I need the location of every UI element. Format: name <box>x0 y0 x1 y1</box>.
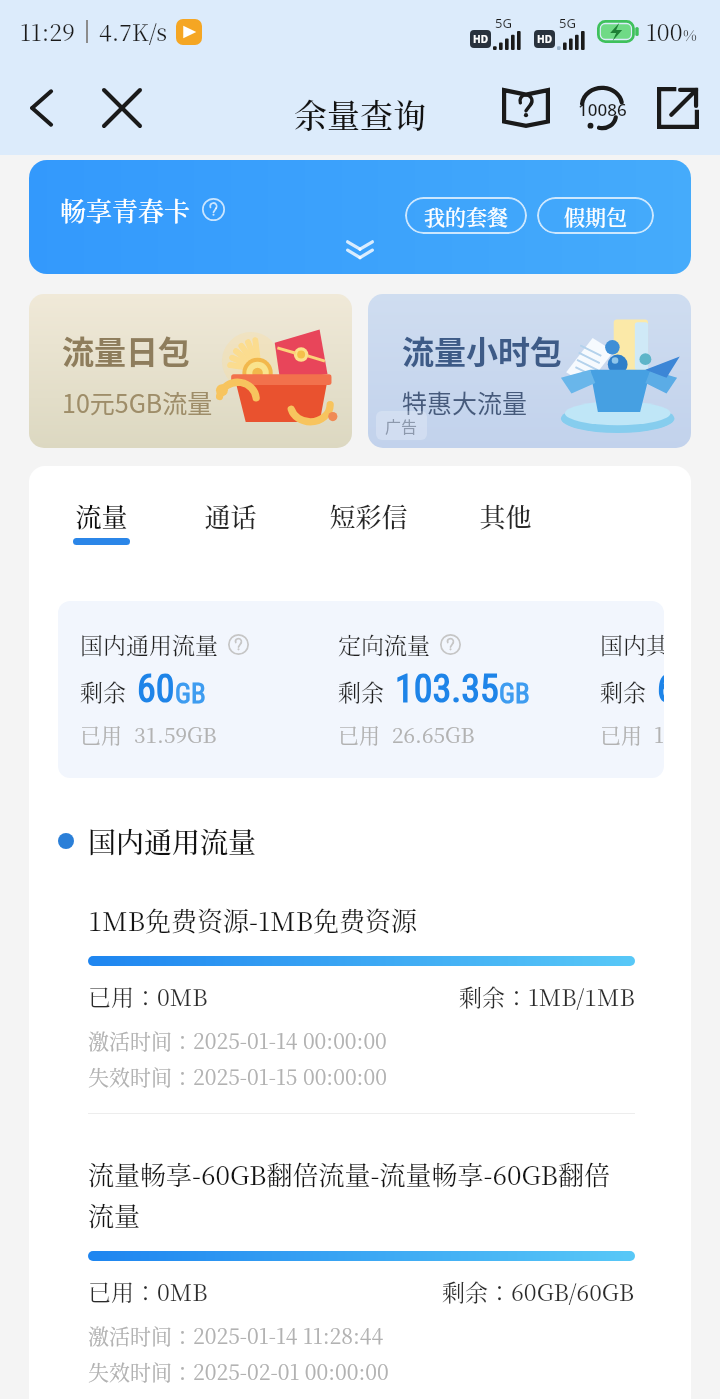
button[interactable]: 其他 <box>477 497 534 538</box>
staticText: 31.59GB <box>134 719 217 749</box>
staticText: 定向流量 <box>338 628 430 661</box>
staticText: 剩余 <box>600 675 646 708</box>
staticText: 103.35 <box>395 667 499 712</box>
staticText: 余量查询 <box>294 90 426 137</box>
button[interactable]: 流量小时包 <box>368 294 691 448</box>
button[interactable]: 国内通用流量 <box>58 821 257 861</box>
staticText: 通话 <box>202 497 259 534</box>
staticText: 已用 <box>600 719 642 749</box>
staticText: 10086 <box>578 98 627 121</box>
staticText: 剩余 <box>80 675 126 708</box>
staticText: 已用 <box>338 719 380 749</box>
button[interactable]: Help <box>498 80 554 136</box>
staticText: 畅享青春卡 <box>60 191 191 228</box>
button[interactable]: 通话 <box>202 497 259 538</box>
button[interactable]: 畅享青春卡 <box>29 160 691 274</box>
button[interactable]: 假期包 <box>537 197 654 234</box>
staticText: GB <box>175 678 206 710</box>
staticText: 剩余 <box>338 675 384 708</box>
button[interactable]: 短彩信 <box>326 497 411 538</box>
staticText: 流量 <box>73 497 130 534</box>
button[interactable]: Expand details <box>346 240 374 262</box>
staticText: 激活时间：2025-01-14 00:00:00 <box>88 1025 387 1055</box>
staticText: 11:29 <box>20 15 75 48</box>
staticText: 我的套餐 <box>424 201 508 231</box>
staticText: 流量日包 <box>62 327 191 373</box>
staticText: 剩余：60GB/60GB <box>442 1275 635 1308</box>
staticText: 1MB免费资源-1MB免费资源 <box>88 901 418 938</box>
staticText: GB <box>499 678 530 710</box>
staticText: 已用：0MB <box>88 1275 208 1308</box>
staticText: 国内其他 <box>600 628 664 661</box>
button[interactable]: 我的套餐 <box>405 197 527 234</box>
staticText: 60 <box>137 667 175 712</box>
staticText: 剩余：1MB/1MB <box>459 980 635 1013</box>
staticText: 特惠大流量 <box>402 384 528 420</box>
staticText: HD <box>473 32 488 46</box>
button[interactable]: 流量日包 <box>29 294 352 448</box>
button[interactable]: Back <box>14 80 70 136</box>
staticText: 国内通用流量 <box>88 821 257 861</box>
staticText: 10元5GB流量 <box>62 384 213 420</box>
button[interactable]: Share <box>650 80 706 136</box>
staticText: 已用 <box>80 719 122 749</box>
staticText: 流量畅享-60GB翻倍流量-流量畅享-60GB翻倍流量 <box>88 1155 635 1233</box>
staticText: 1 <box>654 719 664 749</box>
staticText: 5G <box>559 14 576 32</box>
staticText: 激活时间：2025-01-14 11:28:44 <box>88 1320 384 1350</box>
staticText: 5G <box>495 14 512 32</box>
staticText: 6 <box>657 667 664 712</box>
staticText: HD <box>537 32 552 46</box>
staticText: 26.65GB <box>392 719 475 749</box>
staticText: 100 <box>646 15 683 48</box>
staticText: % <box>683 24 697 46</box>
staticText: 4.7K/s <box>99 15 168 48</box>
button[interactable]: 流量 <box>73 497 130 545</box>
staticText: 失效时间：2025-01-15 00:00:00 <box>88 1061 387 1091</box>
staticText: 已用：0MB <box>88 980 208 1013</box>
button[interactable]: Close <box>94 80 150 136</box>
staticText: 国内通用流量 <box>80 628 218 661</box>
staticText: 假期包 <box>564 201 627 231</box>
staticText: 流量小时包 <box>402 327 563 373</box>
button[interactable]: Call 10086 customer service <box>574 80 630 136</box>
staticText: 其他 <box>477 497 534 534</box>
staticText: 失效时间：2025-02-01 00:00:00 <box>88 1356 389 1386</box>
staticText: 短彩信 <box>326 497 411 534</box>
staticText: 广告 <box>385 414 418 437</box>
